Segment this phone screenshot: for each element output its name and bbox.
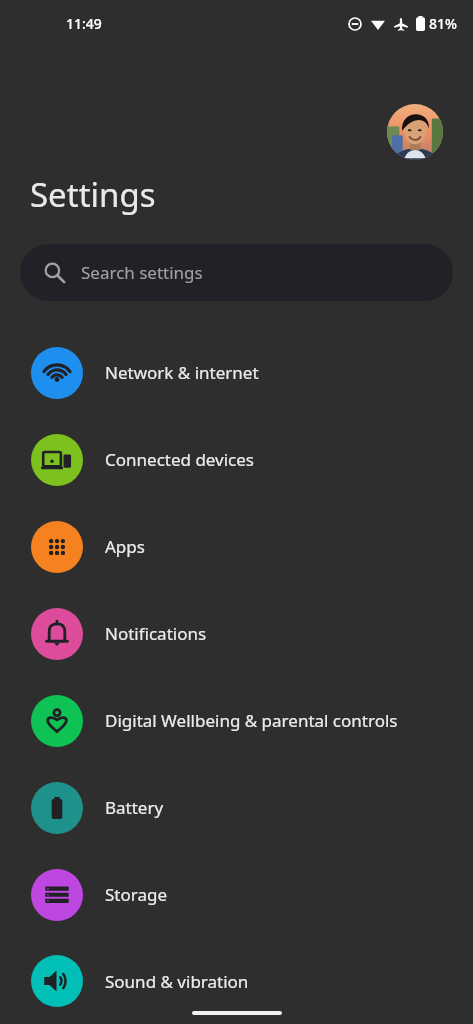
button[interactable]: Apps xyxy=(0,503,473,590)
button[interactable]: Network & internet xyxy=(0,329,473,416)
button[interactable]: Digital Wellbeing & parental controls xyxy=(0,677,473,764)
staticText: Sound & vibration xyxy=(105,970,249,993)
staticText: 11:49 xyxy=(66,14,102,33)
button[interactable]: Storage xyxy=(0,851,473,938)
button[interactable]: Connected devices xyxy=(0,416,473,503)
staticText: Network & internet xyxy=(105,361,259,384)
staticText: Storage xyxy=(105,883,168,906)
staticText: Battery xyxy=(105,796,164,819)
staticText: Search settings xyxy=(81,261,203,284)
button[interactable]: Notifications xyxy=(0,590,473,677)
button[interactable]: Sound & vibration xyxy=(0,938,473,1024)
button[interactable]: Battery xyxy=(0,764,473,851)
button[interactable]: Account avatar xyxy=(387,104,443,160)
button[interactable]: Search settings xyxy=(20,244,453,301)
staticText: Connected devices xyxy=(105,448,255,471)
staticText: Digital Wellbeing & parental controls xyxy=(105,709,398,732)
staticText: Apps xyxy=(105,535,145,558)
staticText: 81% xyxy=(429,14,457,33)
staticText: Settings xyxy=(30,172,156,217)
staticText: Notifications xyxy=(105,622,207,645)
